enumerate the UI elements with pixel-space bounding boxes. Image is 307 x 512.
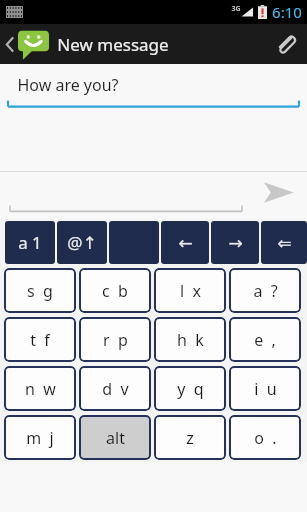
staticText: i u: [254, 378, 277, 400]
button[interactable]: Move left: [161, 221, 209, 264]
staticText: @↑: [67, 231, 97, 254]
staticText: t f: [30, 329, 50, 351]
button[interactable]: y q: [154, 366, 226, 411]
button[interactable]: alt: [79, 415, 151, 460]
staticText: alt: [106, 427, 125, 449]
button[interactable]: Attach: [263, 24, 307, 64]
button[interactable]: o .: [229, 415, 301, 460]
button[interactable]: Send: [254, 171, 302, 213]
button[interactable]: e ,: [229, 317, 301, 362]
staticText: ←: [178, 233, 193, 253]
staticText: c b: [102, 280, 128, 302]
staticText: r p: [103, 329, 128, 351]
staticText: New message: [57, 33, 169, 56]
button[interactable]: Backspace: [261, 221, 307, 264]
staticText: →: [228, 233, 243, 253]
staticText: h k: [177, 329, 204, 351]
button[interactable]: m j: [4, 415, 76, 460]
button[interactable]: d v: [79, 366, 151, 411]
staticText: y q: [177, 378, 204, 400]
button[interactable]: Back: [0, 24, 169, 64]
staticText: n w: [25, 378, 56, 400]
button[interactable]: a ?: [229, 268, 301, 313]
button[interactable]: r p: [79, 317, 151, 362]
staticText: o .: [254, 427, 277, 449]
staticText: z: [186, 427, 194, 449]
button[interactable]: t f: [4, 317, 76, 362]
button[interactable]: l x: [154, 268, 226, 313]
staticText: 6:10: [272, 2, 302, 22]
button[interactable]: a 1: [5, 221, 55, 264]
button[interactable]: @↑: [57, 221, 107, 264]
button[interactable]: c b: [79, 268, 151, 313]
staticText: a ?: [253, 280, 278, 302]
button[interactable]: How are you?: [0, 64, 307, 111]
staticText: 3G: [231, 4, 241, 14]
button[interactable]: n w: [4, 366, 76, 411]
staticText: d v: [102, 378, 129, 400]
button[interactable]: Move right: [211, 221, 259, 264]
button[interactable]: i u: [229, 366, 301, 411]
staticText: s g: [27, 280, 53, 302]
button[interactable]: s g: [4, 268, 76, 313]
staticText: How are you?: [17, 74, 119, 96]
staticText: e ,: [254, 329, 276, 351]
button[interactable]: Space: [109, 221, 159, 264]
staticText: l x: [180, 280, 201, 302]
button[interactable]: h k: [154, 317, 226, 362]
staticText: a 1: [18, 231, 42, 254]
other: Back: [5, 36, 14, 53]
staticText: ⇐: [277, 233, 292, 253]
staticText: m j: [26, 427, 54, 449]
button[interactable]: z: [154, 415, 226, 460]
